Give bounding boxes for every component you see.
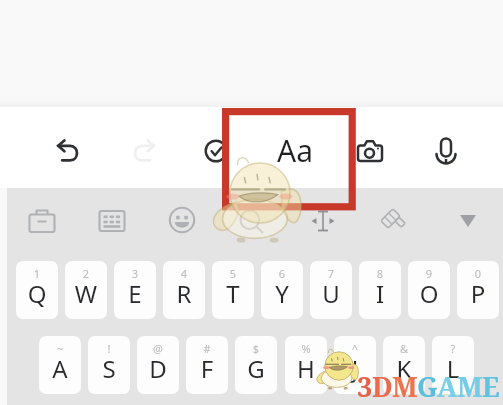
- staticText: S: [88, 352, 130, 385]
- button[interactable]: @: [137, 336, 179, 394]
- staticText: L: [432, 352, 474, 385]
- button[interactable]: Emoji: [158, 196, 206, 244]
- button[interactable]: &: [383, 336, 425, 394]
- button[interactable]: 8: [359, 261, 401, 319]
- staticText: 3: [357, 368, 372, 405]
- button[interactable]: 3: [114, 261, 156, 319]
- staticText: ~: [39, 341, 81, 356]
- staticText: P: [457, 277, 499, 310]
- staticText: W: [65, 277, 107, 310]
- staticText: ?: [432, 341, 474, 356]
- staticText: O: [408, 277, 450, 310]
- staticText: ^: [334, 341, 376, 356]
- button[interactable]: %: [285, 336, 327, 394]
- staticText: T: [212, 277, 254, 310]
- staticText: 1: [16, 266, 58, 281]
- button[interactable]: Theme: [368, 196, 416, 244]
- staticText: 8: [359, 266, 401, 281]
- button[interactable]: Search: [227, 197, 275, 245]
- button[interactable]: Redo: [120, 126, 168, 174]
- button[interactable]: $: [235, 336, 277, 394]
- staticText: A: [437, 368, 457, 405]
- button[interactable]: Keyboard layout: [88, 197, 136, 245]
- staticText: R: [163, 277, 205, 310]
- staticText: Y: [261, 277, 303, 310]
- button[interactable]: Clipboard: [18, 197, 66, 245]
- button[interactable]: 6: [261, 261, 303, 319]
- staticText: H: [285, 352, 327, 385]
- staticText: 0: [457, 266, 499, 281]
- button[interactable]: 5: [212, 261, 254, 319]
- button[interactable]: 7: [310, 261, 352, 319]
- staticText: 7: [310, 266, 352, 281]
- staticText: 5: [212, 266, 254, 281]
- staticText: M: [457, 368, 482, 405]
- staticText: 2: [65, 266, 107, 281]
- button[interactable]: 1: [16, 261, 58, 319]
- staticText: !: [88, 341, 130, 356]
- button[interactable]: #: [186, 336, 228, 394]
- button[interactable]: More options: [444, 197, 492, 245]
- button[interactable]: Confirm: [192, 127, 240, 175]
- staticText: $: [235, 341, 277, 356]
- button[interactable]: ^: [334, 336, 376, 394]
- staticText: E: [482, 368, 499, 405]
- staticText: D: [372, 368, 392, 405]
- staticText: I: [359, 277, 401, 310]
- button[interactable]: Undo: [44, 126, 92, 174]
- button[interactable]: 0: [457, 261, 499, 319]
- staticText: A: [39, 352, 81, 385]
- button[interactable]: 4: [163, 261, 205, 319]
- staticText: G: [417, 368, 437, 405]
- staticText: D: [137, 352, 179, 385]
- staticText: 9: [408, 266, 450, 281]
- staticText: Aa: [277, 130, 313, 171]
- staticText: 6: [261, 266, 303, 281]
- staticText: @: [137, 341, 179, 356]
- staticText: Q: [16, 277, 58, 310]
- button[interactable]: 9: [408, 261, 450, 319]
- staticText: J: [334, 352, 376, 385]
- staticText: G: [235, 352, 277, 385]
- button[interactable]: 2: [65, 261, 107, 319]
- button[interactable]: !: [88, 336, 130, 394]
- button[interactable]: Move cursor: [299, 197, 347, 245]
- staticText: 3: [114, 266, 156, 281]
- button[interactable]: Aa: [262, 126, 328, 174]
- button[interactable]: ?: [432, 336, 474, 394]
- staticText: M: [392, 368, 417, 405]
- button[interactable]: Voice input: [422, 127, 470, 175]
- staticText: U: [310, 277, 352, 310]
- staticText: K: [383, 352, 425, 385]
- staticText: &: [383, 341, 425, 356]
- staticText: E: [114, 277, 156, 310]
- staticText: F: [186, 352, 228, 385]
- button[interactable]: Camera: [346, 127, 394, 175]
- staticText: %: [285, 341, 327, 356]
- staticText: 4: [163, 266, 205, 281]
- staticText: #: [186, 341, 228, 356]
- button[interactable]: ~: [39, 336, 81, 394]
